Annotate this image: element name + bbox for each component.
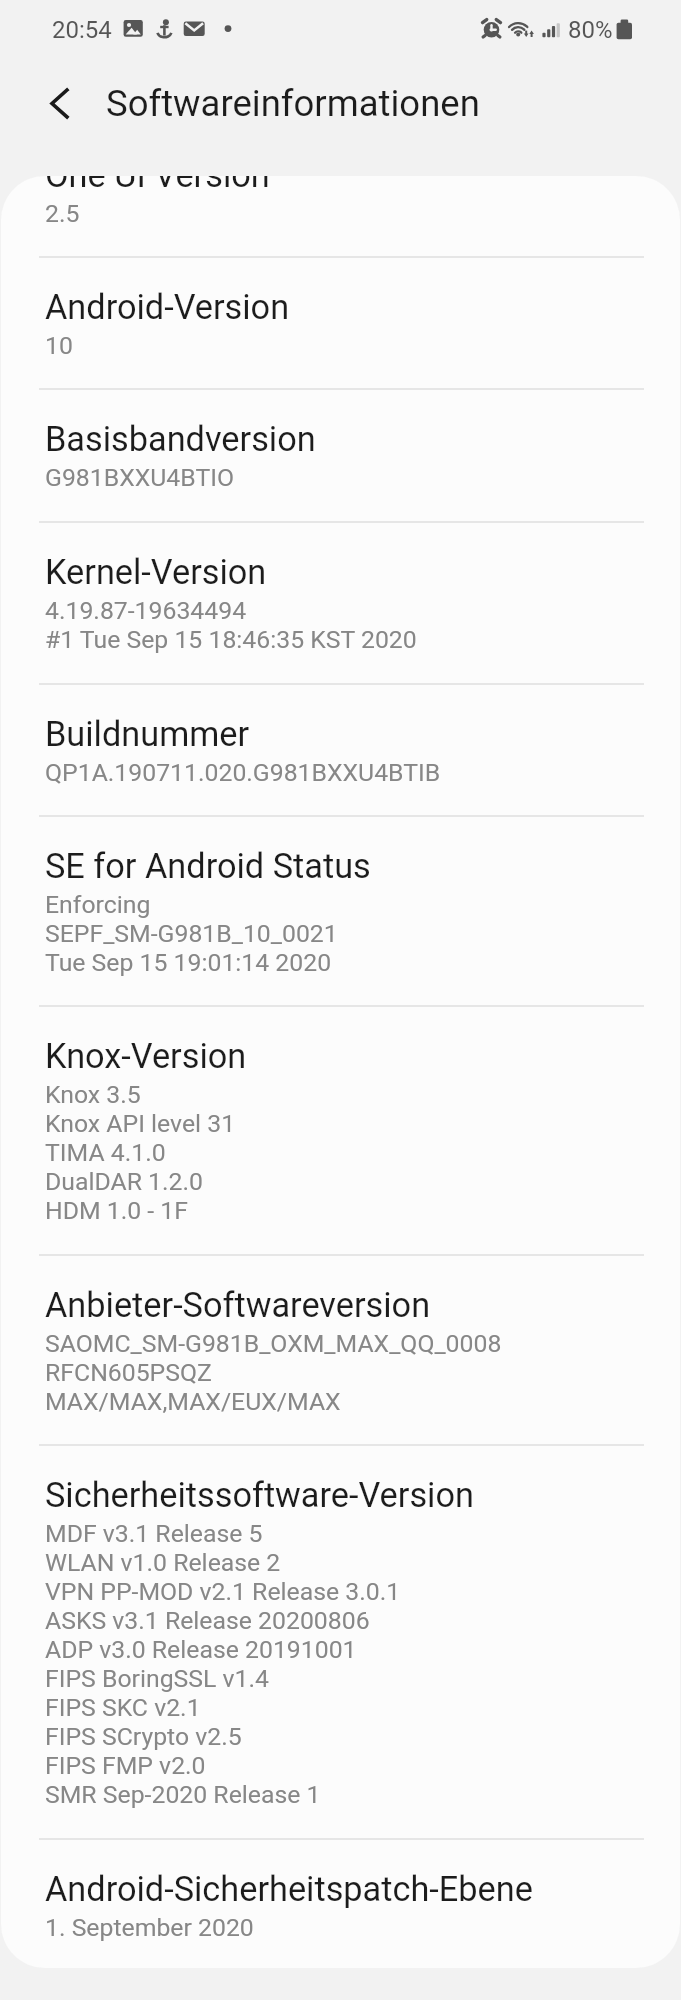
staticText: RFCN605PSQZ: [45, 1358, 212, 1387]
button[interactable]: Sicherheitssoftware-Version: [1, 1444, 680, 1838]
staticText: FIPS SCrypto v2.5: [45, 1722, 242, 1751]
staticText: 10: [45, 331, 73, 360]
staticText: SEPF_SM-G981B_10_0021: [45, 919, 338, 948]
staticText: Kernel-Version: [45, 552, 267, 592]
staticText: Enforcing: [45, 890, 151, 919]
staticText: FIPS SKC v2.1: [45, 1693, 201, 1722]
button[interactable]: Android-Sicherheitspatch-Ebene: [1, 1838, 680, 1964]
staticText: DualDAR 1.2.0: [45, 1167, 203, 1196]
staticText: #1 Tue Sep 15 18:46:35 KST 2020: [45, 625, 417, 654]
staticText: 4.19.87-19634494: [45, 596, 247, 625]
staticText: Buildnummer: [45, 714, 250, 754]
staticText: FIPS FMP v2.0: [45, 1751, 206, 1780]
staticText: VPN PP-MOD v2.1 Release 3.0.1: [45, 1577, 401, 1606]
button[interactable]: Android-Version: [1, 256, 680, 388]
staticText: WLAN v1.0 Release 2: [45, 1548, 281, 1577]
staticText: FIPS BoringSSL v1.4: [45, 1664, 269, 1693]
staticText: Basisbandversion: [45, 419, 316, 459]
button[interactable]: One UI Version: [1, 176, 680, 256]
staticText: TIMA 4.1.0: [45, 1138, 166, 1167]
staticText: Android-Version: [45, 287, 290, 327]
staticText: One UI Version: [45, 176, 270, 195]
staticText: Knox 3.5: [45, 1080, 141, 1109]
staticText: 1. September 2020: [45, 1913, 254, 1942]
button[interactable]: Basisbandversion: [1, 388, 680, 521]
staticText: Knox API level 31: [45, 1109, 236, 1138]
button[interactable]: Anbieter-Softwareversion: [1, 1254, 680, 1445]
staticText: Knox-Version: [45, 1036, 247, 1076]
staticText: Softwareinformationen: [106, 82, 480, 125]
staticText: ASKS v3.1 Release 20200806: [45, 1606, 370, 1635]
staticText: SMR Sep-2020 Release 1: [45, 1780, 321, 1809]
staticText: QP1A.190711.020.G981BXXU4BTIB: [45, 758, 441, 787]
button[interactable]: Back: [33, 77, 85, 129]
staticText: SAOMC_SM-G981B_OXM_MAX_QQ_0008: [45, 1329, 502, 1358]
staticText: MDF v3.1 Release 5: [45, 1519, 263, 1548]
staticText: 20:54: [52, 16, 112, 44]
button[interactable]: Buildnummer: [1, 683, 680, 815]
staticText: 80%: [568, 16, 613, 44]
staticText: ADP v3.0 Release 20191001: [45, 1635, 357, 1664]
staticText: MAX/MAX,MAX/EUX/MAX: [45, 1387, 341, 1416]
staticText: 2.5: [45, 199, 80, 228]
staticText: Tue Sep 15 19:01:14 2020: [45, 948, 332, 977]
staticText: Anbieter-Softwareversion: [45, 1285, 431, 1325]
staticText: Sicherheitssoftware-Version: [45, 1475, 474, 1515]
staticText: HDM 1.0 - 1F: [45, 1196, 188, 1225]
staticText: Android-Sicherheitspatch-Ebene: [45, 1869, 533, 1909]
staticText: SE for Android Status: [45, 846, 371, 886]
staticText: G981BXXU4BTIO: [45, 463, 234, 492]
button[interactable]: Kernel-Version: [1, 521, 680, 683]
button[interactable]: SE for Android Status: [1, 815, 680, 1005]
button[interactable]: Knox-Version: [1, 1005, 680, 1254]
